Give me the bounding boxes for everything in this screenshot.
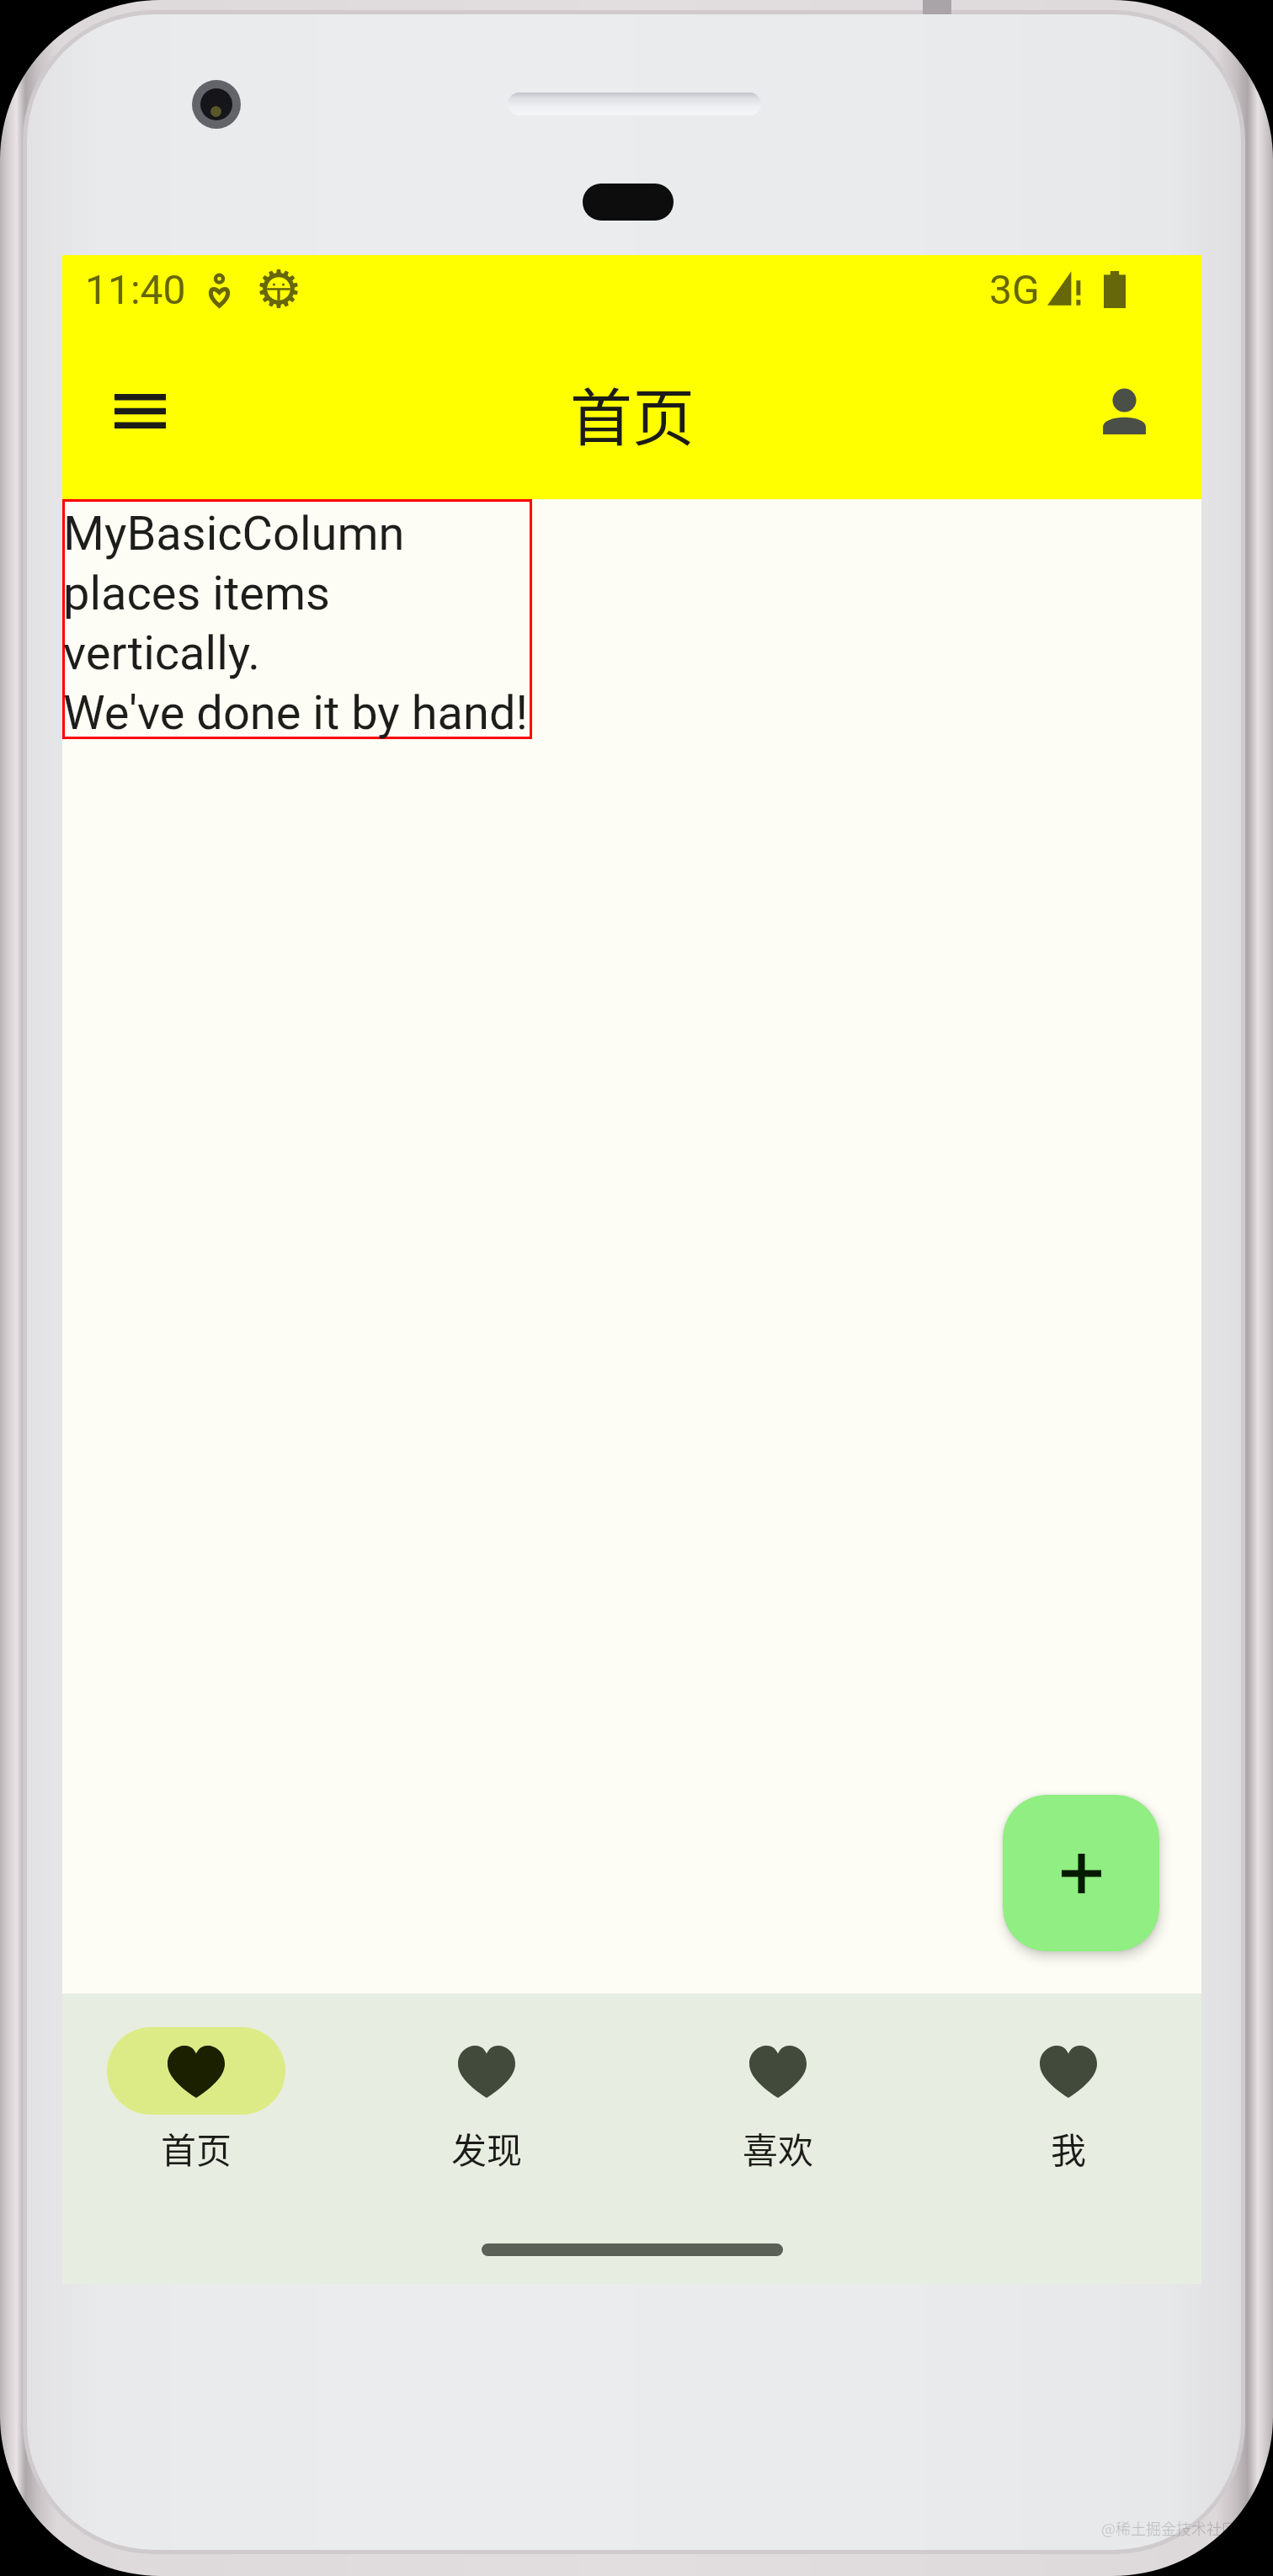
staticText: MyBasicColumn places items vertically. W… [63, 506, 905, 741]
button[interactable]: Menu [89, 360, 190, 461]
button[interactable]: 首页 [54, 1993, 338, 2212]
button[interactable]: Add [1003, 1795, 1159, 1951]
staticText: 11:40 [85, 266, 186, 313]
button[interactable]: 喜欢 [636, 1993, 920, 2212]
button[interactable]: 我 [926, 1993, 1211, 2212]
button[interactable]: 发现 [344, 1993, 629, 2212]
button[interactable]: Profile [1073, 360, 1174, 461]
staticText: 喜欢 [636, 2122, 920, 2174]
staticText: @稀土掘金技术社区 [1101, 2517, 1238, 2539]
staticText: 首页 [54, 2122, 338, 2174]
staticText: 发现 [344, 2122, 629, 2174]
staticText: 3G [989, 266, 1040, 313]
staticText: 我 [926, 2122, 1211, 2174]
staticText: 首页 [570, 368, 695, 458]
